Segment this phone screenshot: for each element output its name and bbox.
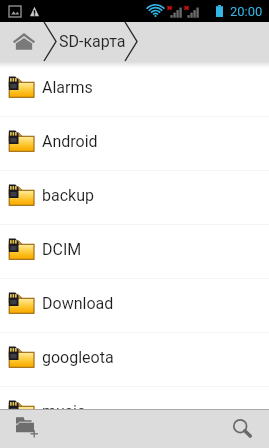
button[interactable]: Download	[0, 279, 269, 333]
button[interactable]: DCIM	[0, 225, 269, 279]
button[interactable]: backup	[0, 171, 269, 225]
staticText: music	[42, 402, 86, 409]
button[interactable]: Home	[0, 22, 50, 61]
staticText: 20:00	[230, 4, 263, 19]
staticText: Download	[42, 294, 114, 313]
staticText: DCIM	[42, 240, 82, 259]
button[interactable]: Alarms	[0, 63, 269, 117]
button[interactable]: Android	[0, 117, 269, 171]
staticText: backup	[42, 186, 94, 205]
staticText: googleota	[42, 348, 114, 367]
button[interactable]: music	[0, 387, 269, 409]
button[interactable]: New folder	[0, 410, 50, 448]
button[interactable]: Search	[219, 410, 269, 448]
staticText: Alarms	[42, 78, 93, 97]
button[interactable]: SD-карта	[54, 22, 128, 61]
staticText: SD-карта	[59, 32, 126, 51]
staticText: Android	[42, 132, 98, 151]
button[interactable]: googleota	[0, 333, 269, 387]
